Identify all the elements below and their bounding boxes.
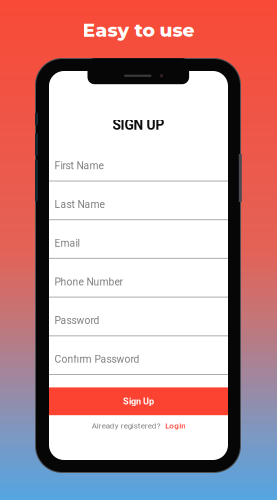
staticText: Confirm Password — [54, 353, 139, 365]
button[interactable]: Email — [49, 220, 228, 259]
button[interactable]: Sign Up — [49, 387, 228, 415]
button[interactable]: Phone Number — [49, 259, 228, 298]
staticText: Phone Number — [54, 276, 122, 288]
staticText: Sign Up — [123, 396, 154, 407]
staticText: SIGN UP — [112, 117, 164, 133]
button[interactable]: Confirm Password — [49, 336, 228, 375]
button[interactable]: Login — [165, 421, 185, 430]
staticText: Email — [54, 237, 79, 249]
staticText: Password — [54, 315, 99, 327]
button[interactable]: First Name — [49, 143, 228, 181]
staticText: Login — [165, 421, 185, 430]
button[interactable]: Password — [49, 298, 228, 336]
staticText: Easy to use — [82, 19, 194, 41]
staticText: Already registered? — [92, 421, 161, 430]
staticText: First Name — [54, 160, 103, 172]
button[interactable]: Last Name — [49, 181, 228, 220]
staticText: Last Name — [54, 198, 104, 210]
